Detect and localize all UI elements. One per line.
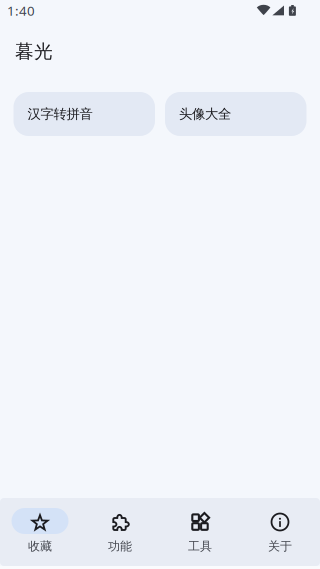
- button[interactable]: 汉字转拼音: [13, 92, 155, 136]
- staticText: 汉字转拼音: [27, 106, 92, 122]
- staticText: 暮光: [15, 40, 53, 63]
- staticText: 头像大全: [179, 106, 231, 122]
- staticText: 收藏: [28, 539, 52, 554]
- staticText: 功能: [108, 539, 132, 554]
- button[interactable]: 收藏: [0, 498, 80, 566]
- staticText: 关于: [268, 539, 292, 554]
- button[interactable]: 功能: [80, 498, 160, 566]
- button[interactable]: 头像大全: [165, 92, 306, 136]
- button[interactable]: 工具: [160, 498, 240, 566]
- staticText: 1:40: [7, 2, 35, 19]
- button[interactable]: 关于: [240, 498, 320, 566]
- staticText: 工具: [188, 539, 212, 554]
